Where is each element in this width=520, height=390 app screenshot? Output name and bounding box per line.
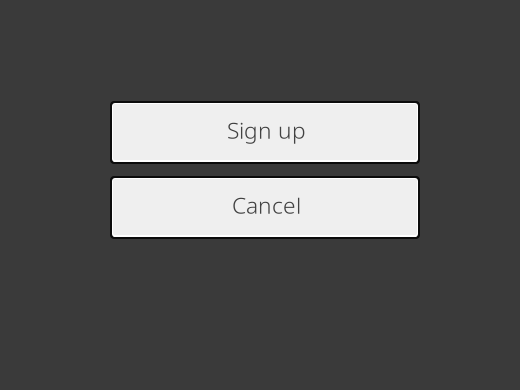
staticText: Cancel — [232, 190, 301, 220]
staticText: Sign up — [227, 115, 306, 145]
button[interactable]: Sign up — [110, 101, 420, 164]
button[interactable]: Cancel — [110, 176, 420, 239]
